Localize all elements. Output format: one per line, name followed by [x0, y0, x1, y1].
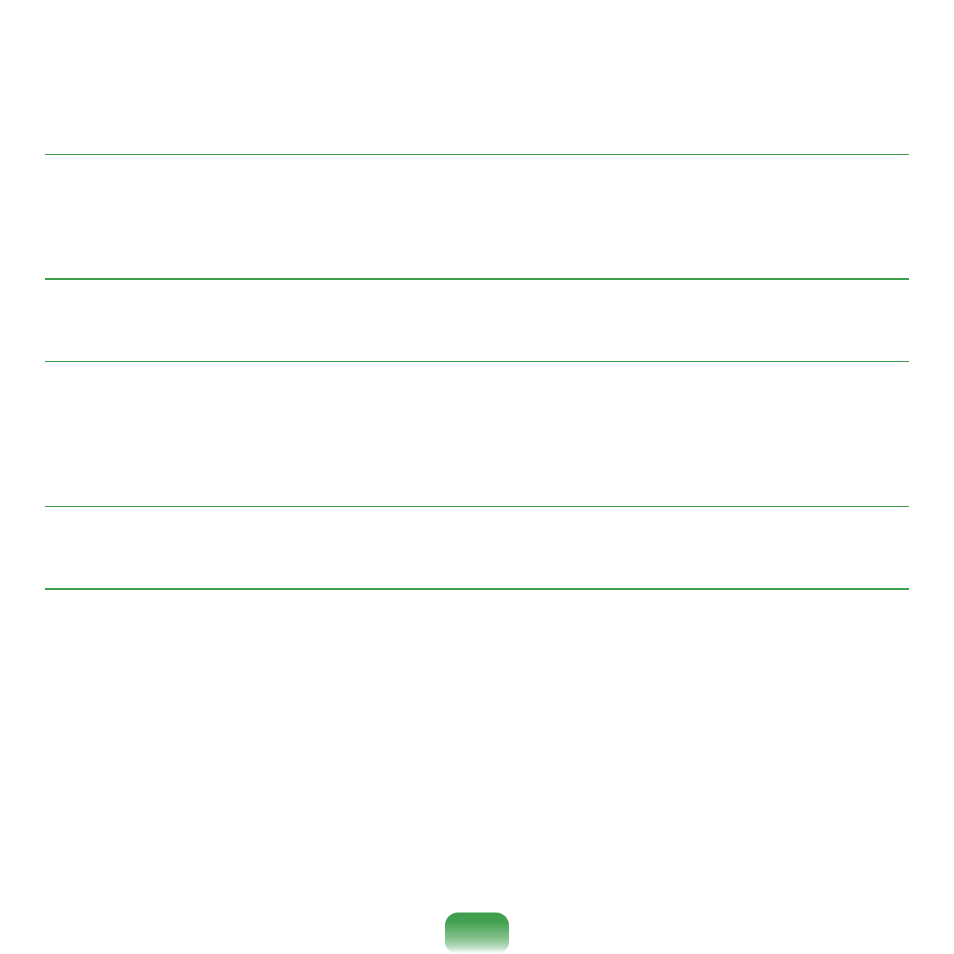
button[interactable]: Input field — [45, 362, 909, 507]
button[interactable]: Input field — [45, 507, 909, 590]
button[interactable]: Continue — [445, 912, 509, 954]
button[interactable]: Input field — [45, 0, 909, 155]
button[interactable]: Input field — [45, 280, 909, 362]
button[interactable]: Input field — [45, 155, 909, 280]
